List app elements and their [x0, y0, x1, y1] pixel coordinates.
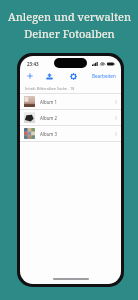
button[interactable]: Album 2 — [20, 109, 121, 125]
staticText: Album 3 — [40, 131, 58, 137]
staticText: 23:43 — [27, 61, 39, 67]
staticText: Album 2 — [40, 115, 58, 121]
button[interactable]: Album 3 — [20, 125, 121, 141]
button[interactable]: Album hinzufügen — [24, 70, 36, 82]
button[interactable]: Bearbeiten — [92, 73, 116, 79]
staticText: Bearbeiten — [92, 73, 116, 79]
button[interactable]: Album 1 — [20, 93, 121, 109]
staticText: Inhalt: Bilderalben Suche - 18 — [25, 86, 75, 91]
staticText: Anlegen und verwalten — [8, 9, 131, 24]
button[interactable]: Einstellungen — [67, 70, 79, 82]
staticText: Deiner Fotoalben — [24, 26, 115, 41]
button[interactable]: Hochladen — [43, 70, 55, 82]
staticText: Album 1 — [40, 99, 58, 105]
